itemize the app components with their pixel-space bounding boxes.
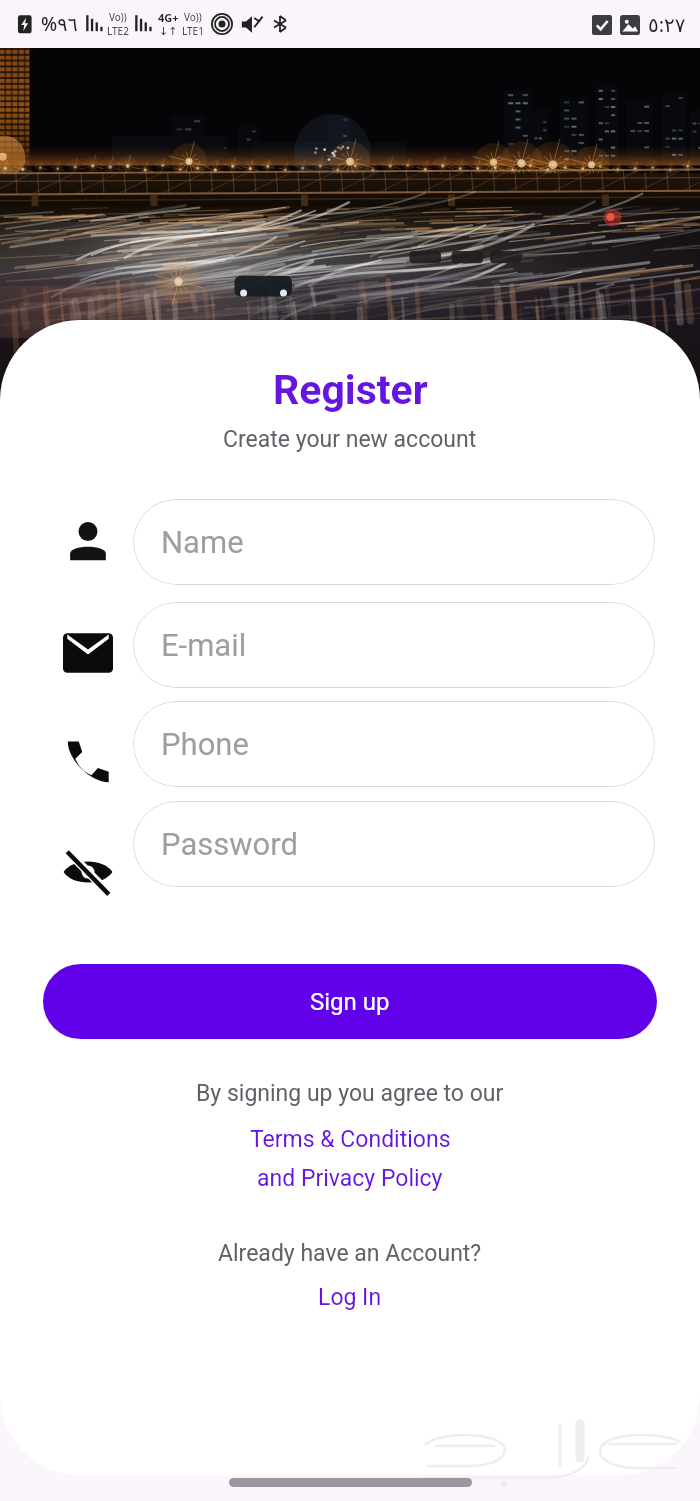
button[interactable]: Phone [133, 701, 655, 787]
other: E-mail [63, 628, 113, 678]
staticText: Password [161, 826, 298, 862]
button[interactable]: Name [133, 499, 655, 585]
staticText: Terms & Conditions [250, 1126, 451, 1153]
staticText: Already have an Account? [218, 1240, 482, 1267]
staticText: ↓↑ [159, 25, 178, 38]
staticText: Phone [161, 726, 249, 762]
staticText: Sign up [310, 988, 390, 1016]
staticText: and Privacy Policy [257, 1165, 443, 1192]
staticText: Vo)) [109, 10, 127, 24]
staticText: E-mail [161, 627, 247, 663]
other: Name [67, 520, 109, 562]
staticText: Create your new account [223, 426, 477, 453]
button[interactable]: Password [133, 801, 655, 887]
staticText: Register [273, 366, 428, 414]
staticText: Vo)) [184, 10, 202, 24]
staticText: ٥:٢٧ [648, 11, 686, 38]
other: Show password [62, 845, 114, 897]
staticText: LTE2 [107, 24, 129, 38]
button[interactable]: Sign up [43, 964, 657, 1039]
staticText: LTE1 [182, 24, 204, 38]
staticText: Name [161, 524, 244, 560]
staticText: %٩٦ [41, 11, 78, 37]
button[interactable]: Log In [318, 1284, 382, 1311]
other: Phone [65, 737, 111, 783]
staticText: 4G+ [158, 10, 179, 25]
button[interactable]: E-mail [133, 602, 655, 688]
staticText: By signing up you agree to our [196, 1080, 504, 1107]
button[interactable]: and Privacy Policy [257, 1165, 443, 1192]
staticText: Log In [318, 1284, 382, 1311]
button[interactable]: Terms & Conditions [250, 1126, 451, 1153]
